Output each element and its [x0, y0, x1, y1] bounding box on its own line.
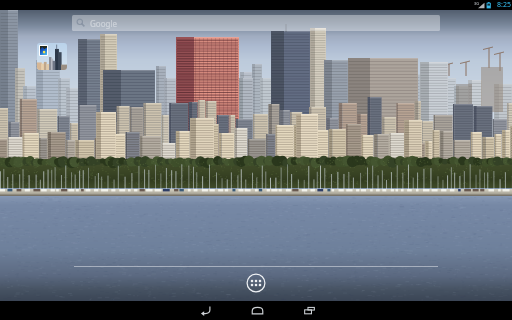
button[interactable]: Gallery: [37, 43, 67, 70]
button[interactable]: Apps: [242, 269, 270, 297]
button[interactable]: Back: [179, 301, 231, 320]
button[interactable]: Recent apps: [283, 301, 335, 320]
button[interactable]: Google: [72, 15, 440, 31]
staticText: Google: [90, 18, 117, 29]
staticText: 8:25: [497, 0, 511, 10]
button[interactable]: Home: [231, 301, 283, 320]
staticText: 3G: [474, 1, 480, 6]
